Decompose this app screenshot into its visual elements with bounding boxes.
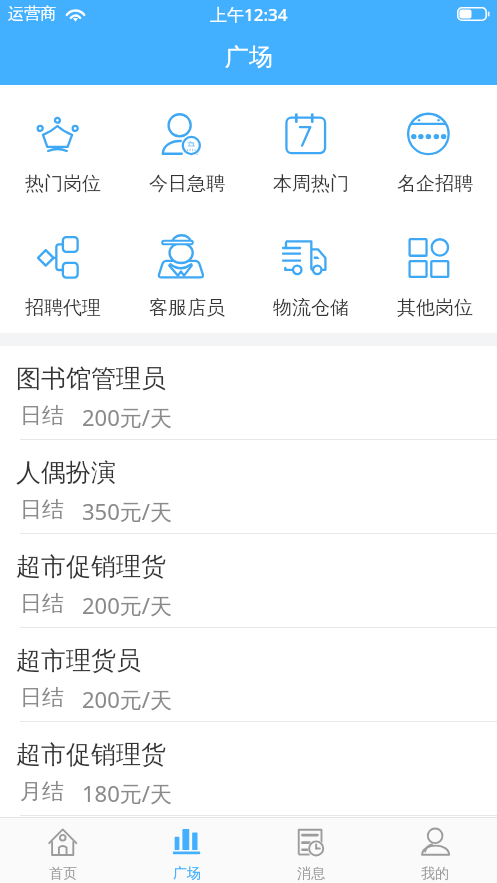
staticText: 运营商 xyxy=(8,4,56,24)
button[interactable]: 图书馆管理员 xyxy=(0,346,497,440)
staticText: 本周热门 xyxy=(273,172,349,196)
staticText: 超市促销理货 xyxy=(16,551,166,582)
button[interactable]: 名企招聘 xyxy=(373,111,497,196)
staticText: 消息 xyxy=(297,865,325,883)
staticText: 其他岗位 xyxy=(397,296,473,320)
button[interactable]: 超市理货员 xyxy=(0,628,497,722)
staticText: 超市理货员 xyxy=(16,645,141,676)
staticText: 180元/天 xyxy=(82,778,172,808)
button[interactable]: 超市促销理货 xyxy=(0,534,497,628)
button[interactable]: 热门岗位 xyxy=(0,111,125,196)
staticText: 招聘代理 xyxy=(25,296,101,320)
staticText: 超市促销理货 xyxy=(16,739,166,770)
staticText: 200元/天 xyxy=(82,402,172,432)
button[interactable]: 本周热门 xyxy=(249,111,373,196)
staticText: 上午12:34 xyxy=(210,3,288,26)
staticText: 日结 xyxy=(20,684,64,712)
button[interactable]: 今日急聘 xyxy=(125,111,249,196)
staticText: 名企招聘 xyxy=(397,172,473,196)
staticText: 热门岗位 xyxy=(25,172,101,196)
staticText: 月结 xyxy=(20,778,64,806)
button[interactable]: 消息 xyxy=(249,818,373,883)
staticText: 客服店员 xyxy=(149,296,225,320)
button[interactable]: 我的 xyxy=(373,818,497,883)
button[interactable]: 超市促销理货 xyxy=(0,722,497,816)
button[interactable]: 首页 xyxy=(0,818,125,883)
staticText: 日结 xyxy=(20,590,64,618)
staticText: 图书馆管理员 xyxy=(16,363,166,394)
staticText: 人偶扮演 xyxy=(16,457,116,488)
staticText: 今日急聘 xyxy=(149,172,225,196)
staticText: 首页 xyxy=(49,865,77,883)
staticText: 广场 xyxy=(173,865,201,883)
button[interactable]: 广场 xyxy=(125,818,249,883)
staticText: 物流仓储 xyxy=(273,296,349,320)
staticText: 我的 xyxy=(421,865,449,883)
staticText: 日结 xyxy=(20,402,64,430)
button[interactable]: 招聘代理 xyxy=(0,235,125,320)
button[interactable]: 物流仓储 xyxy=(249,235,373,320)
staticText: 200元/天 xyxy=(82,590,172,620)
staticText: 350元/天 xyxy=(82,496,172,526)
staticText: 200元/天 xyxy=(82,684,172,714)
button[interactable]: 其他岗位 xyxy=(373,235,497,320)
button[interactable]: 客服店员 xyxy=(125,235,249,320)
staticText: 广场 xyxy=(225,42,273,72)
staticText: 日结 xyxy=(20,496,64,524)
button[interactable]: 人偶扮演 xyxy=(0,440,497,534)
